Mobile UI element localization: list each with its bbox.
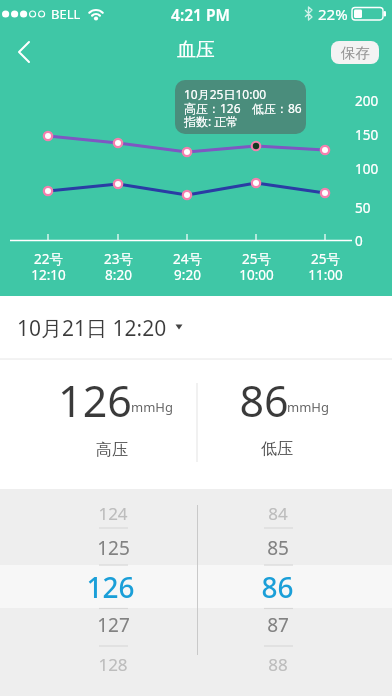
staticText: mmHg bbox=[131, 398, 173, 416]
staticText: 126 bbox=[86, 568, 135, 606]
staticText: 9:20 bbox=[174, 266, 201, 284]
staticText: 23号 bbox=[104, 250, 133, 268]
staticText: 86 bbox=[239, 371, 289, 427]
staticText: 10月25日10:00 bbox=[184, 86, 267, 102]
staticText: 血压 bbox=[177, 38, 215, 62]
staticText: 指数: 正常 bbox=[184, 113, 239, 129]
staticText: 高压 bbox=[96, 440, 128, 460]
button[interactable] bbox=[0, 36, 52, 68]
staticText: 85 bbox=[267, 535, 289, 561]
staticText: 124 bbox=[98, 502, 128, 525]
button[interactable]: 保存 bbox=[331, 41, 379, 64]
staticText: 22% bbox=[318, 4, 348, 24]
staticText: 84 bbox=[268, 502, 288, 525]
staticText: 22号 bbox=[34, 250, 63, 268]
button[interactable] bbox=[0, 297, 392, 359]
staticText: 25号 bbox=[242, 250, 271, 268]
staticText: 86 bbox=[261, 568, 294, 606]
staticText: 保存 bbox=[341, 44, 370, 62]
staticText: 12:10 bbox=[31, 266, 66, 284]
staticText: 87 bbox=[267, 612, 289, 638]
staticText: 50 bbox=[355, 199, 371, 217]
staticText: 0 bbox=[355, 232, 363, 250]
staticText: BELL bbox=[51, 5, 81, 23]
staticText: 8:20 bbox=[105, 266, 132, 284]
staticText: 128 bbox=[98, 653, 128, 676]
staticText: 24号 bbox=[173, 250, 202, 268]
staticText: 高压：126 bbox=[184, 100, 241, 116]
staticText: 200 bbox=[355, 92, 379, 110]
staticText: 10月21日 12:20 bbox=[17, 314, 167, 343]
staticText: 11:00 bbox=[308, 266, 343, 284]
staticText: mmHg bbox=[287, 398, 329, 416]
staticText: 100 bbox=[355, 160, 379, 178]
staticText: 127 bbox=[97, 612, 130, 638]
staticText: 25号 bbox=[311, 250, 340, 268]
staticText: 125 bbox=[97, 535, 130, 561]
staticText: 低压：86 bbox=[252, 100, 302, 116]
staticText: 88 bbox=[268, 653, 288, 676]
staticText: 10:00 bbox=[239, 266, 274, 284]
staticText: 低压 bbox=[261, 439, 293, 459]
staticText: 126 bbox=[58, 371, 132, 427]
staticText: 150 bbox=[355, 126, 379, 144]
staticText: 4:21 PM bbox=[171, 4, 230, 25]
